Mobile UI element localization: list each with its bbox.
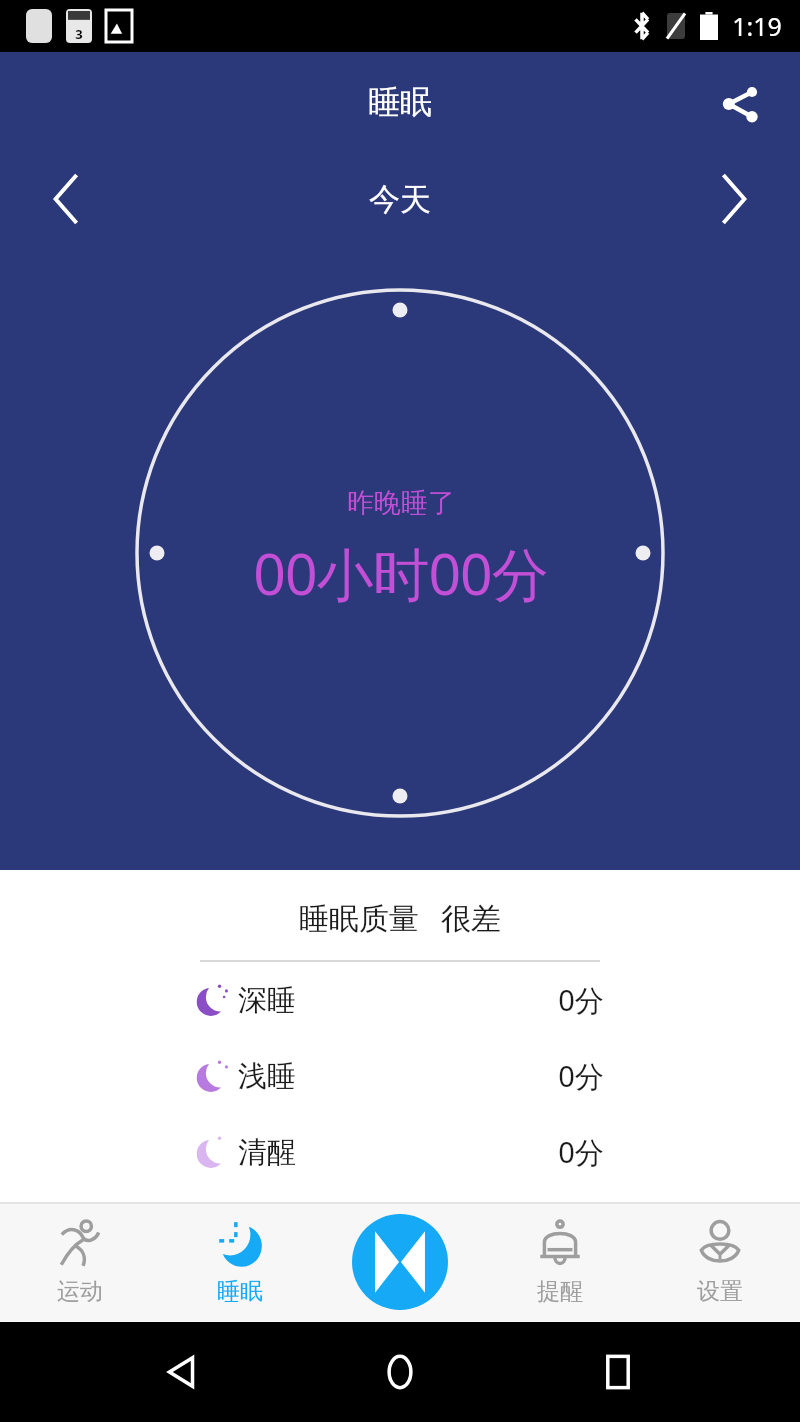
staticText: 设置 xyxy=(697,1277,743,1306)
staticText: 睡眠 xyxy=(217,1277,263,1306)
staticText: 00小时00分 xyxy=(253,534,548,612)
staticText: 0分 xyxy=(558,980,604,1020)
button[interactable]: Next day xyxy=(696,162,770,236)
button[interactable]: Previous day xyxy=(30,162,104,236)
button[interactable]: 设置 xyxy=(640,1202,800,1322)
button[interactable]: Back xyxy=(148,1337,218,1407)
staticText: 浅睡 xyxy=(238,1058,296,1095)
staticText: 睡眠 xyxy=(368,82,432,122)
staticText: 提醒 xyxy=(537,1277,583,1306)
button[interactable]: 浅睡 xyxy=(0,1038,800,1114)
staticText: 1:19 xyxy=(732,9,782,43)
button[interactable]: 提醒 xyxy=(480,1202,640,1322)
button[interactable]: Home xyxy=(320,1202,480,1322)
button[interactable]: Share xyxy=(710,74,770,134)
staticText: 很差 xyxy=(441,900,501,938)
staticText: 今天 xyxy=(369,180,431,219)
staticText: 0分 xyxy=(558,1056,604,1096)
button[interactable]: 清醒 xyxy=(0,1114,800,1190)
staticText: 清醒 xyxy=(238,1134,296,1171)
staticText: 运动 xyxy=(57,1277,103,1306)
staticText: 3 xyxy=(75,25,83,43)
button[interactable]: 睡眠 xyxy=(160,1202,320,1322)
button[interactable]: 深睡 xyxy=(0,962,800,1038)
staticText: 深睡 xyxy=(238,982,296,1019)
button[interactable]: Recent apps xyxy=(583,1337,653,1407)
button[interactable]: 运动 xyxy=(0,1202,160,1322)
staticText: 睡眠质量 xyxy=(299,900,419,938)
staticText: 昨晚睡了 xyxy=(347,486,455,520)
button[interactable]: Home xyxy=(365,1337,435,1407)
staticText: 0分 xyxy=(558,1132,604,1172)
